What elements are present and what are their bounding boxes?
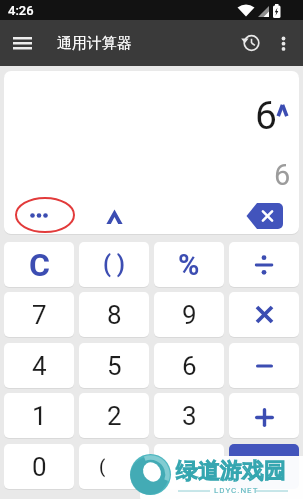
button[interactable]: C xyxy=(4,242,74,287)
button[interactable] xyxy=(154,444,224,489)
staticText: 3 xyxy=(182,401,197,431)
button[interactable] xyxy=(229,242,299,287)
staticText: 4 xyxy=(32,351,47,381)
button[interactable]: 7 xyxy=(4,292,74,337)
staticText: 4:26 xyxy=(8,3,34,18)
button[interactable]: 3 xyxy=(154,393,224,438)
staticText: LDYC.NET xyxy=(214,486,259,495)
button[interactable] xyxy=(229,343,299,388)
staticText: ( xyxy=(99,456,106,477)
button[interactable]: 4 xyxy=(4,343,74,388)
button[interactable] xyxy=(13,37,32,50)
staticText: 绿道游戏园 xyxy=(176,457,286,485)
button[interactable] xyxy=(229,393,299,438)
staticText: ( ) xyxy=(103,251,125,278)
button[interactable]: 2 xyxy=(79,393,149,438)
button[interactable]: % xyxy=(154,242,224,287)
button[interactable] xyxy=(237,200,292,232)
staticText: 6 xyxy=(182,351,197,381)
button[interactable] xyxy=(87,200,142,232)
button[interactable]: ( ) xyxy=(79,242,149,287)
staticText: % xyxy=(178,248,200,282)
staticText: 6 xyxy=(255,93,277,139)
staticText: 9 xyxy=(182,300,197,330)
button[interactable]: 8 xyxy=(79,292,149,337)
button[interactable]: 9 xyxy=(154,292,224,337)
staticText: 通用计算器 xyxy=(57,34,132,53)
button[interactable] xyxy=(279,36,288,54)
button[interactable]: 6 xyxy=(154,343,224,388)
staticText: 2 xyxy=(107,401,122,431)
button[interactable] xyxy=(229,444,299,489)
button[interactable] xyxy=(229,292,299,337)
staticText: 6 xyxy=(274,158,291,192)
staticText: 7 xyxy=(32,300,47,330)
staticText: 5 xyxy=(107,351,122,381)
staticText: C xyxy=(29,246,50,284)
button[interactable]: 0 xyxy=(4,444,74,489)
staticText: 0 xyxy=(32,452,47,482)
button[interactable]: ( xyxy=(79,444,149,489)
button[interactable] xyxy=(11,199,66,231)
button[interactable] xyxy=(240,32,262,54)
button[interactable]: 5 xyxy=(79,343,149,388)
button[interactable]: 1 xyxy=(4,393,74,438)
staticText: 8 xyxy=(107,300,122,330)
staticText: 1 xyxy=(32,401,47,431)
